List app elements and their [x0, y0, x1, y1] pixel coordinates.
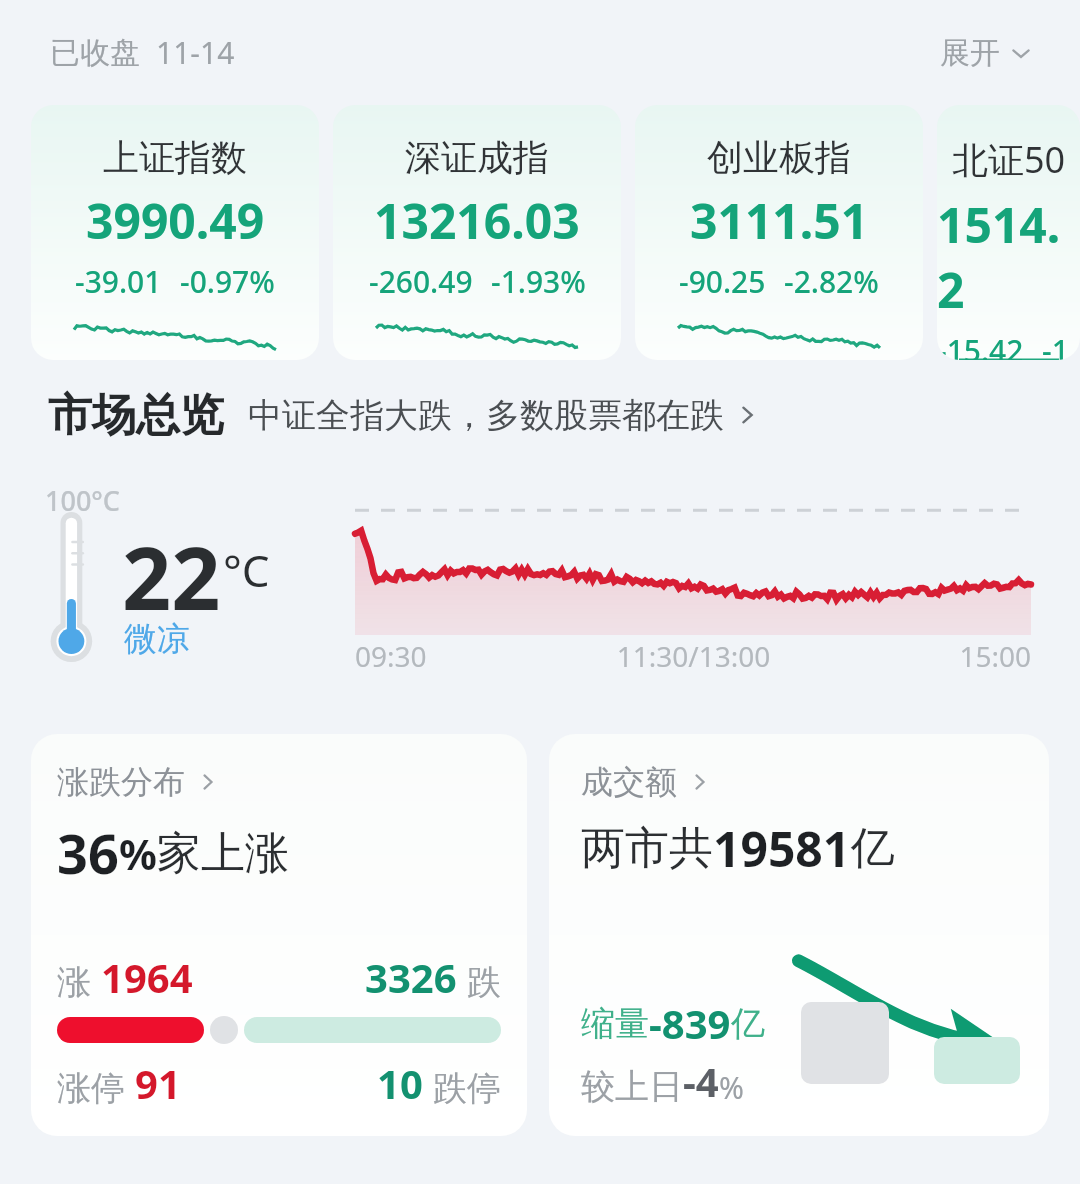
staticText: 09:30 — [355, 637, 581, 675]
staticText: 市场总览 — [48, 388, 224, 443]
staticText: 涨停 — [57, 1067, 125, 1110]
staticText: 中证全指大跌，多数股票都在跌 — [248, 394, 724, 437]
button[interactable]: 创业板指 — [635, 105, 923, 360]
staticText: 1514.2 — [937, 192, 1080, 322]
staticText: 3326 — [365, 950, 457, 1004]
staticText: 1964 — [101, 950, 193, 1004]
staticText: 13216.03 — [374, 188, 580, 253]
staticText: 成交额 — [581, 762, 677, 802]
button[interactable]: 北证50 — [937, 105, 1080, 360]
staticText: 亿 — [731, 1002, 765, 1045]
staticText: °C — [223, 540, 270, 600]
staticText: 展开 — [940, 34, 1000, 72]
staticText: 11:30/13:00 — [581, 637, 806, 675]
staticText: -4 — [683, 1054, 719, 1108]
staticText: 15:00 — [806, 637, 1031, 675]
staticText: 3111.51 — [690, 188, 869, 253]
staticText: 91 — [135, 1056, 181, 1110]
staticText: % — [719, 1067, 744, 1108]
staticText: 跌停 — [433, 1067, 501, 1110]
staticText: -90.25 — [679, 261, 766, 302]
staticText: -839 — [649, 996, 731, 1050]
staticText: -1.93% — [491, 261, 586, 302]
staticText: 跌 — [467, 961, 501, 1004]
staticText: 缩量 — [581, 1002, 649, 1045]
staticText: 北证50 — [952, 135, 1066, 184]
staticText: 家上涨 — [157, 826, 289, 881]
staticText: -260.49 — [369, 261, 473, 302]
staticText: 36 — [57, 816, 119, 890]
staticText: 涨 — [57, 961, 91, 1004]
button[interactable]: 上证指数 — [31, 105, 319, 360]
staticText: -0.97% — [180, 261, 275, 302]
staticText: 3990.49 — [86, 188, 265, 253]
staticText: -15.42 — [937, 330, 1024, 360]
staticText: 11-14 — [156, 32, 235, 73]
staticText: 19581 — [713, 816, 851, 881]
button[interactable]: 深证成指 — [333, 105, 621, 360]
staticText: 创业板指 — [707, 135, 851, 180]
staticText: 涨跌分布 — [57, 762, 185, 802]
staticText: % — [119, 825, 157, 882]
staticText: -1.0% — [1042, 330, 1080, 360]
staticText: -39.01 — [75, 261, 162, 302]
staticText: 已收盘 — [50, 34, 140, 72]
staticText: 深证成指 — [405, 135, 549, 180]
staticText: 较上日 — [581, 1065, 683, 1108]
staticText: 两市共 — [581, 821, 713, 876]
button[interactable]: 成交额 — [549, 734, 1049, 1136]
staticText: 22 — [122, 518, 221, 635]
staticText: 10 — [377, 1056, 423, 1110]
staticText: 微凉 — [124, 618, 190, 660]
staticText: 100°C — [45, 482, 121, 519]
staticText: 上证指数 — [103, 135, 247, 180]
button[interactable]: 展开 — [928, 26, 1044, 80]
button[interactable]: 市场总览 — [0, 360, 1080, 470]
staticText: -2.82% — [784, 261, 879, 302]
staticText: 亿 — [851, 821, 895, 876]
button[interactable]: 涨跌分布 — [31, 734, 527, 1136]
